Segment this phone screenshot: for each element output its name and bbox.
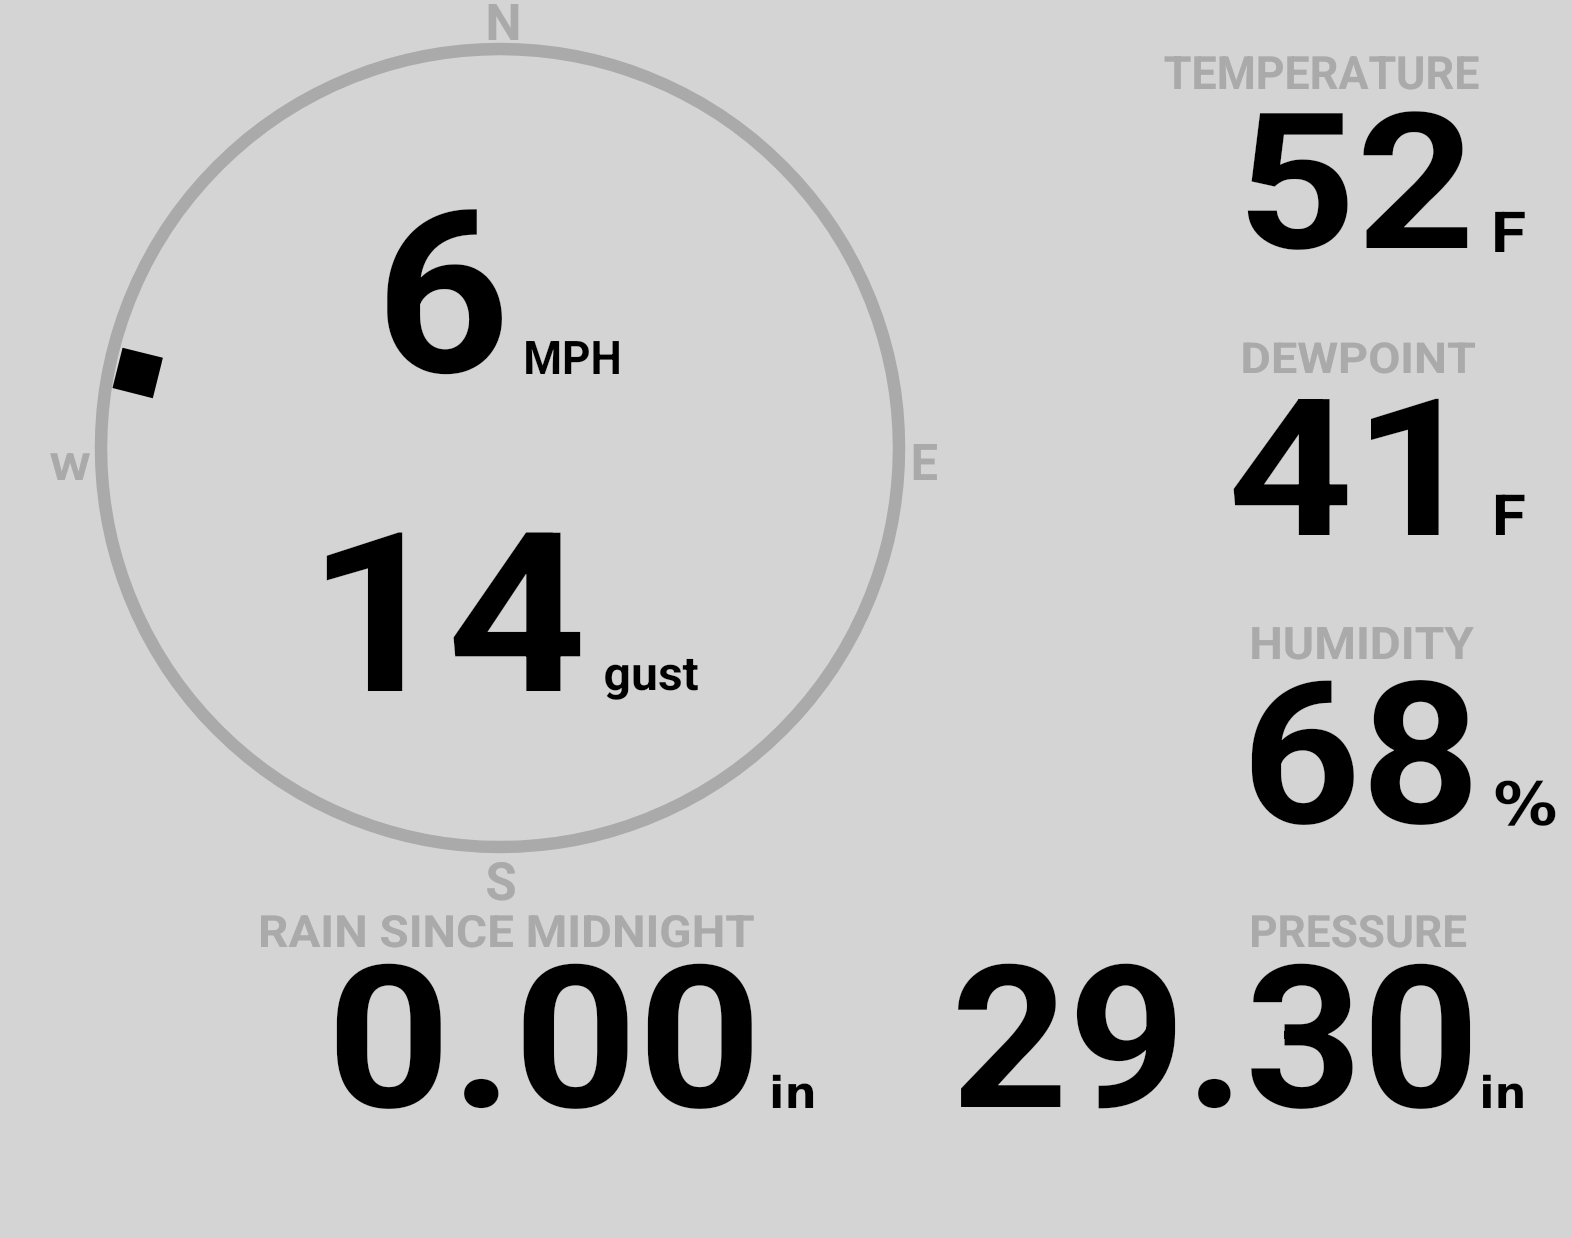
button[interactable]: Dew point 41 degrees Fahrenheit (1100, 320, 1571, 580)
button[interactable]: Temperature 52 degrees Fahrenheit (1100, 30, 1571, 300)
button[interactable]: Humidity 68 percent (1100, 600, 1571, 860)
button[interactable]: Rain since midnight 0.00 inches (240, 895, 860, 1135)
button[interactable]: Wind 6 miles per hour, gusting 14, direc… (60, 10, 940, 890)
button[interactable]: Pressure 29.30 inches (900, 895, 1540, 1135)
